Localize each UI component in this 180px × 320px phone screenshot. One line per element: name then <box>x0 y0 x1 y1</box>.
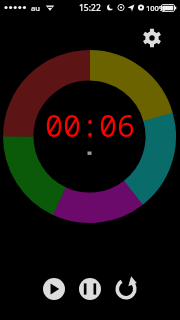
button[interactable]: Settings <box>138 24 166 52</box>
staticText: au <box>31 3 40 13</box>
button[interactable]: Reset <box>110 273 142 305</box>
button[interactable]: Pause <box>74 273 106 305</box>
button[interactable]: Start <box>38 273 70 305</box>
staticText: 15:22 <box>79 2 101 14</box>
button[interactable]: Timer dial 00:06 <box>3 50 176 223</box>
staticText: 100% <box>146 3 166 13</box>
staticText: 00:06 <box>45 105 135 146</box>
